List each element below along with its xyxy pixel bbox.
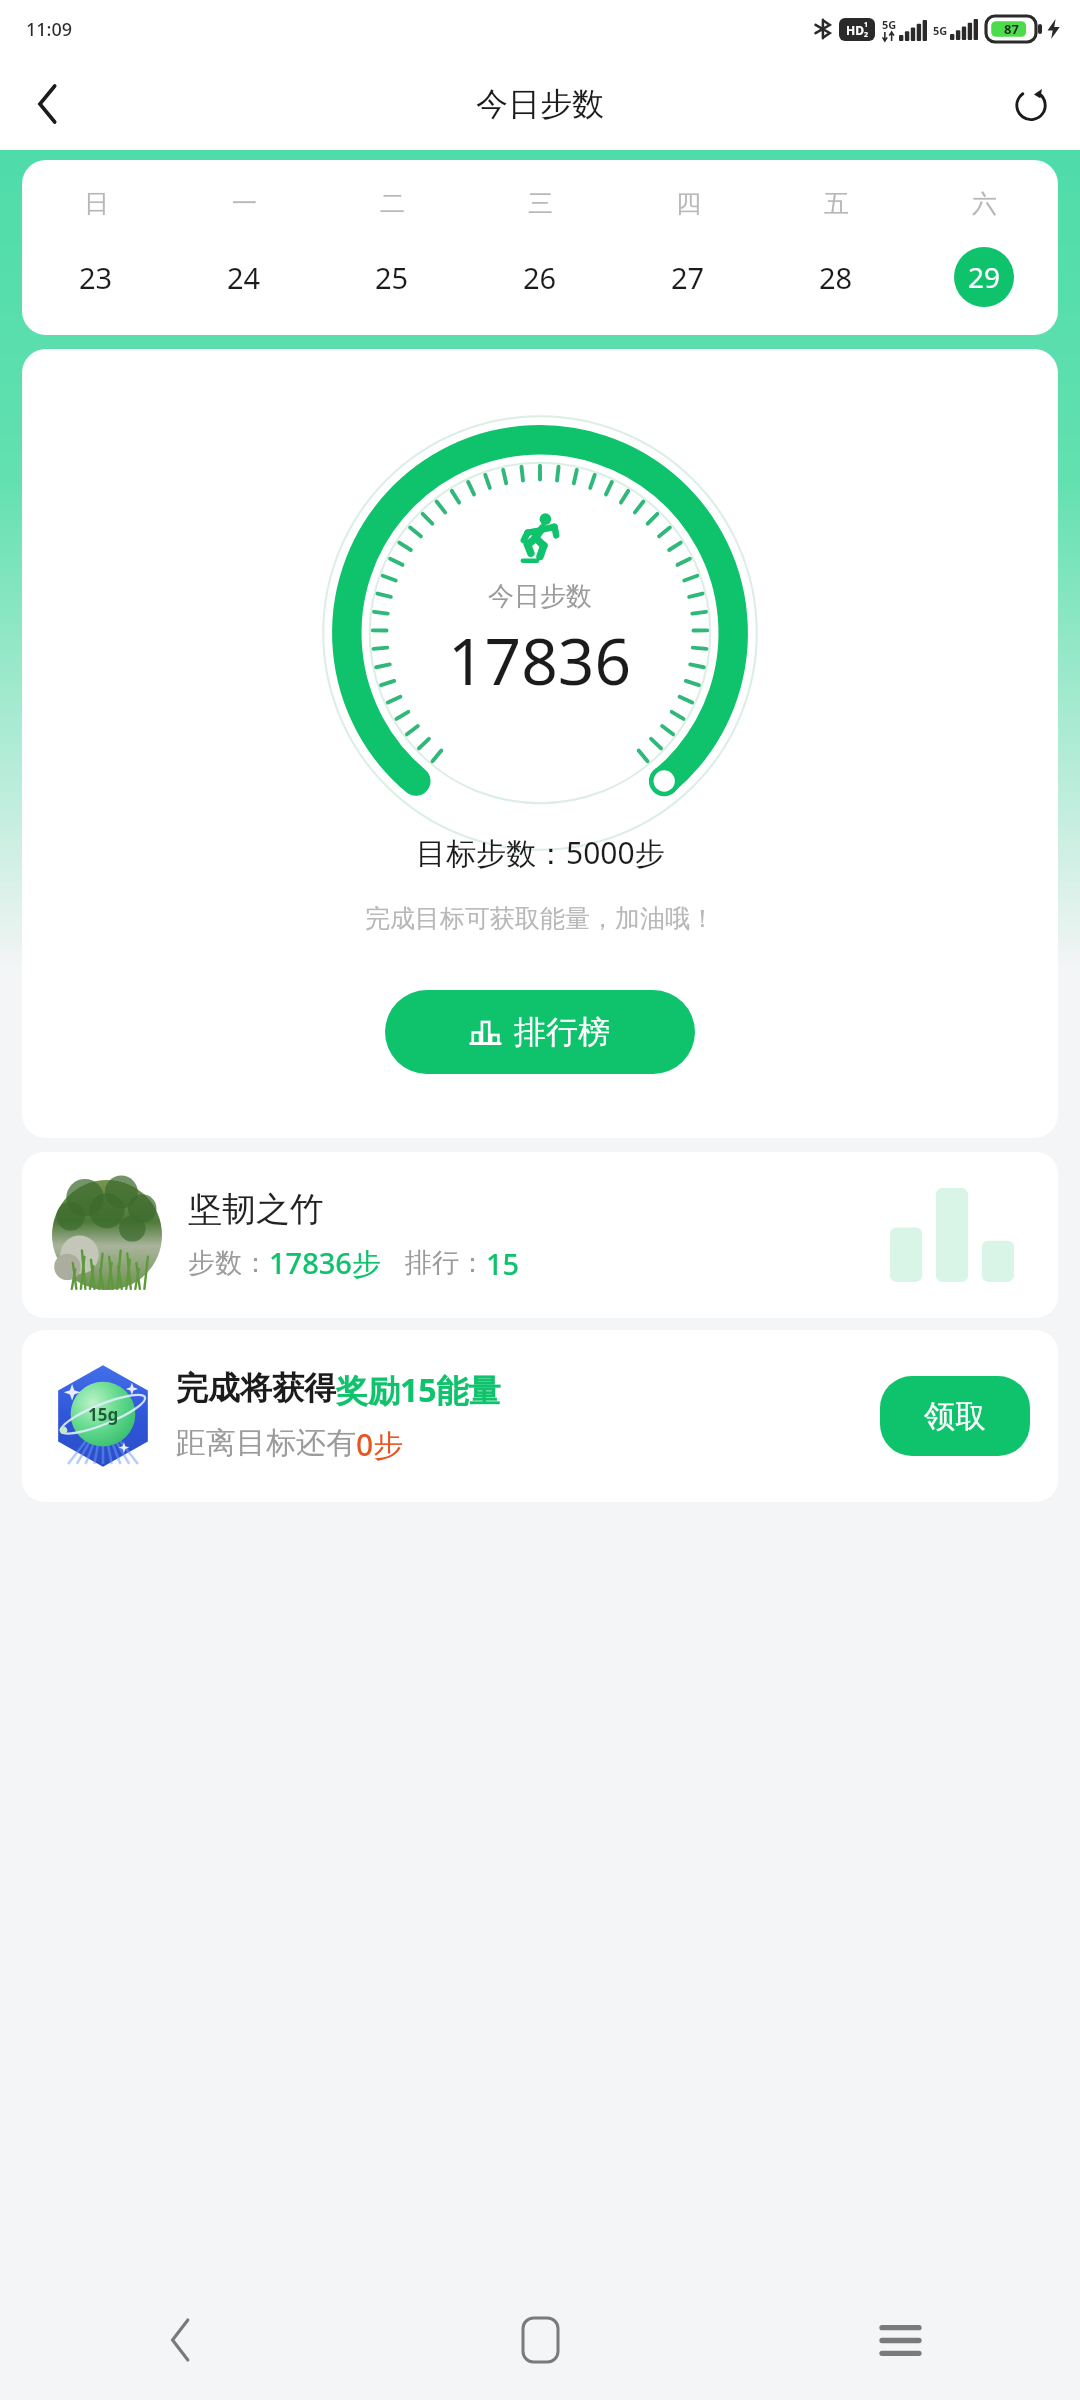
staticText: 坚韧之竹 — [188, 1188, 324, 1231]
button[interactable]: 29 — [910, 247, 1058, 307]
staticText: 5G — [933, 23, 948, 38]
staticText: 87 — [1004, 20, 1019, 38]
button[interactable]: 25 — [318, 247, 466, 307]
staticText: 目标步数：5000步 — [416, 832, 665, 873]
staticText: 完成将获得 — [176, 1368, 336, 1408]
staticText: 15 — [486, 1244, 520, 1283]
button[interactable]: Back — [12, 69, 82, 139]
button[interactable]: Share — [996, 69, 1066, 139]
staticText: 28 — [819, 258, 853, 297]
staticText: 完成目标可获取能量，加油哦！ — [365, 903, 715, 934]
staticText: 今日步数 — [488, 580, 592, 613]
staticText: 三 — [528, 188, 553, 219]
staticText: 步数： — [188, 1246, 269, 1280]
staticText: 0步 — [356, 1424, 404, 1465]
button[interactable]: 领取 — [880, 1376, 1030, 1456]
staticText: 24 — [227, 258, 261, 297]
button[interactable]: 28 — [762, 247, 910, 307]
staticText: 六 — [972, 188, 997, 219]
staticText: 1 — [864, 20, 869, 30]
button[interactable]: 24 — [170, 247, 318, 307]
staticText: 5G — [882, 17, 897, 32]
button[interactable]: 26 — [466, 247, 614, 307]
staticText: 2 — [864, 30, 869, 40]
button[interactable]: 27 — [614, 247, 762, 307]
button[interactable]: Back — [0, 2280, 360, 2400]
button[interactable]: 坚韧之竹 — [22, 1152, 1058, 1318]
staticText: 二 — [380, 188, 405, 219]
staticText: 排行： — [405, 1246, 486, 1280]
button[interactable]: Recent apps — [720, 2280, 1080, 2400]
staticText: 一 — [232, 188, 257, 219]
staticText: 奖励15能量 — [336, 1368, 501, 1412]
staticText: 27 — [671, 258, 705, 297]
staticText: 排行榜 — [514, 1012, 610, 1052]
staticText: 17836 — [448, 617, 632, 704]
button[interactable]: 23 — [22, 247, 170, 307]
staticText: 五 — [824, 188, 849, 219]
staticText: 29 — [968, 258, 1001, 296]
staticText: 今日步数 — [476, 84, 604, 124]
staticText: 领取 — [924, 1397, 986, 1436]
staticText: 17836步 — [269, 1243, 381, 1283]
staticText: 15g — [88, 1403, 119, 1426]
staticText: 11:09 — [26, 17, 73, 42]
staticText: 26 — [523, 258, 557, 297]
button[interactable]: Home — [360, 2280, 720, 2400]
staticText: 25 — [375, 258, 409, 297]
staticText: 距离目标还有 — [176, 1424, 356, 1462]
staticText: 日 — [84, 188, 109, 219]
staticText: 23 — [79, 258, 113, 297]
staticText: 四 — [676, 188, 701, 219]
staticText: HD — [846, 22, 864, 38]
button[interactable]: 日 — [22, 160, 1058, 335]
button[interactable]: 排行榜 — [385, 990, 695, 1074]
